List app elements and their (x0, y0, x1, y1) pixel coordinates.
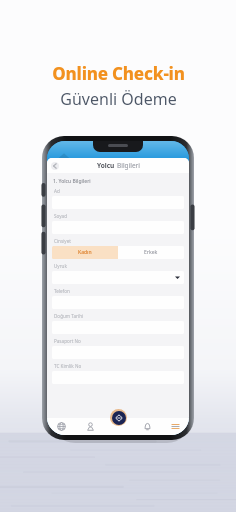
button[interactable]: Telefon (52, 288, 184, 313)
button[interactable]: Ticket (110, 409, 127, 426)
button[interactable]: Erkek (118, 246, 184, 259)
button[interactable]: Language (47, 418, 76, 435)
button[interactable]: Doğum Tarihi (52, 313, 184, 338)
staticText: TC Kimlik No (54, 363, 82, 369)
button[interactable]: Notifications (133, 418, 161, 435)
button[interactable]: Uyruk (52, 263, 184, 288)
staticText: Yolcu (97, 161, 117, 170)
button[interactable]: Soyad (52, 213, 184, 238)
staticText: Uyruk (54, 263, 67, 269)
button[interactable]: Menu (161, 418, 189, 435)
staticText: Pasaport No (54, 338, 81, 344)
button[interactable]: TC Kimlik No (52, 363, 184, 388)
staticText: Güvenli Ödeme (60, 88, 177, 110)
button[interactable]: Ad (52, 188, 184, 213)
staticText: Soyad (54, 213, 67, 219)
button[interactable]: Pasaport No (52, 338, 184, 363)
staticText: 1. Yolcu Bilgileri (53, 178, 91, 185)
staticText: Telefon (54, 288, 70, 294)
staticText: Kadın (78, 249, 92, 256)
staticText: Erkek (144, 249, 158, 256)
staticText: Online Check-in (52, 62, 185, 85)
staticText: Doğum Tarihi (54, 313, 84, 319)
staticText: Ad (54, 188, 60, 194)
staticText: Bilgileri (117, 161, 140, 170)
button[interactable]: Back (51, 162, 59, 170)
button[interactable]: Kadın (52, 246, 118, 259)
button[interactable]: Profile (76, 418, 105, 435)
staticText: Cinsiyet (54, 238, 71, 244)
